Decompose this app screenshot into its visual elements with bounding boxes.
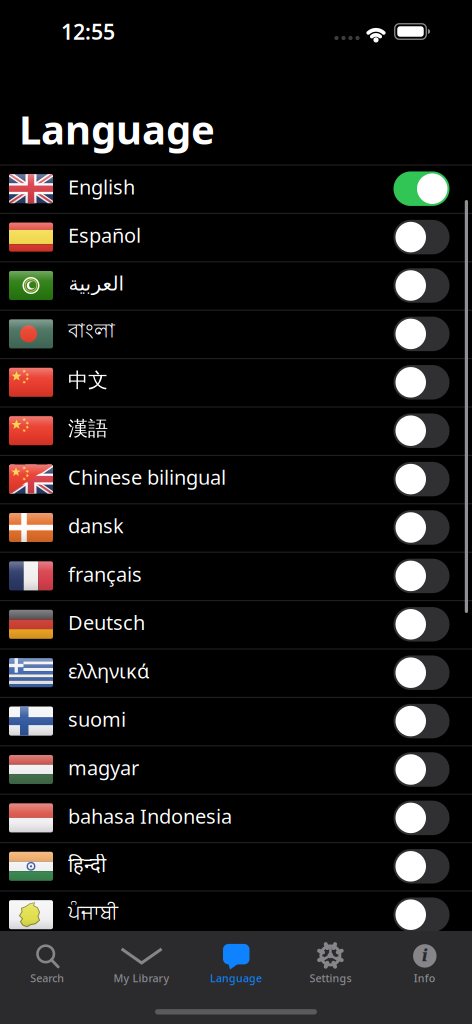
button[interactable]: ਪੰਜਾਬੀ (0, 890, 472, 939)
staticText: français (68, 561, 142, 587)
button[interactable]: 中文 (0, 358, 472, 406)
button[interactable]: Language (189, 937, 283, 989)
staticText: Language (210, 971, 262, 985)
button[interactable]: suomi (0, 697, 472, 745)
staticText: Deutsch (68, 609, 145, 636)
staticText: हिन्दी (68, 851, 106, 878)
button[interactable]: Deutsch (0, 600, 472, 648)
staticText: Settings (309, 971, 351, 985)
staticText: magyar (68, 754, 139, 781)
staticText: Search (30, 971, 64, 985)
staticText: suomi (68, 706, 126, 732)
staticText: বাংলা (68, 318, 115, 346)
button[interactable]: हिन्दी (0, 842, 472, 890)
button[interactable]: Search (0, 937, 94, 989)
staticText: 中文 (68, 368, 108, 393)
button[interactable]: বাংলা (0, 310, 472, 358)
staticText: English (68, 173, 135, 200)
button[interactable]: English (0, 164, 472, 213)
staticText: 漢語 (68, 416, 108, 441)
button[interactable]: ελληνικά (0, 648, 472, 697)
button[interactable]: Chinese bilingual (0, 455, 472, 503)
staticText: Chinese bilingual (68, 464, 226, 490)
button[interactable]: i (378, 937, 472, 989)
button[interactable]: dansk (0, 503, 472, 552)
button[interactable]: magyar (0, 745, 472, 794)
staticText: العربية (68, 272, 124, 295)
button[interactable]: français (0, 552, 472, 600)
staticText: i (422, 946, 428, 965)
staticText: My Library (114, 971, 170, 985)
staticText: Language (19, 102, 215, 156)
button[interactable]: Settings (283, 937, 378, 989)
staticText: Español (68, 222, 141, 248)
staticText: dansk (68, 512, 124, 539)
staticText: ελληνικά (68, 657, 149, 684)
button[interactable]: 漢語 (0, 406, 472, 455)
staticText: 12:55 (61, 17, 115, 46)
button[interactable]: bahasa Indonesia (0, 794, 472, 842)
staticText: ਪੰਜਾਬੀ (68, 903, 118, 922)
staticText: bahasa Indonesia (68, 803, 232, 829)
button[interactable]: العربية (0, 261, 472, 310)
button[interactable]: My Library (94, 937, 189, 989)
staticText: Info (414, 971, 436, 985)
button[interactable]: Español (0, 213, 472, 261)
